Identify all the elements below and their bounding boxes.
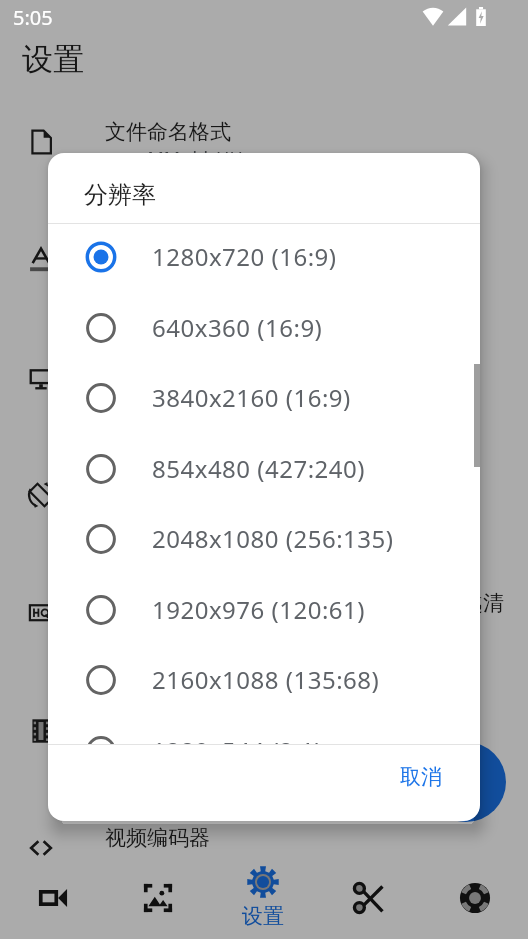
- button[interactable]: More: [422, 856, 528, 939]
- button[interactable]: 取消: [385, 750, 457, 804]
- button[interactable]: Screenshot: [105, 856, 210, 939]
- staticText: 1920x976 (120:61): [152, 593, 366, 626]
- button[interactable]: 视频编码器: [0, 789, 528, 906]
- button[interactable]: 640x360 (16:9): [48, 293, 480, 363]
- staticText: 视频编码器: [105, 825, 210, 851]
- button[interactable]: 视频质量（数值越高文件体积越大画面越清: [0, 554, 528, 671]
- button[interactable]: 分辨率: [0, 319, 528, 436]
- button[interactable]: 文件名前缀: [0, 201, 528, 318]
- staticText: 640x360 (16:9): [152, 311, 323, 344]
- staticText: 30 fps: [105, 735, 157, 760]
- staticText: 文件命名格式: [105, 119, 231, 145]
- staticText: 取消: [400, 764, 442, 790]
- button[interactable]: 1280x720 (16:9): [48, 223, 480, 292]
- button[interactable]: 视频帧率: [0, 672, 528, 789]
- staticText: 文件名前缀: [105, 237, 210, 263]
- button[interactable]: 屏幕方向: [0, 436, 528, 553]
- button[interactable]: Start recording: [426, 742, 506, 822]
- staticText: 高质量: [105, 617, 159, 640]
- staticText: 2048x1080 (256:135): [152, 522, 394, 555]
- staticText: 1280x720 (16:9): [152, 240, 337, 273]
- button[interactable]: 3840x2160 (16:9): [48, 363, 480, 433]
- staticText: 3840x2160 (16:9): [152, 381, 351, 414]
- staticText: 屏幕方向: [105, 472, 189, 498]
- staticText: yyyy-MM-dd_HH-mm-ss: [105, 146, 306, 171]
- button[interactable]: Settings: [210, 856, 316, 939]
- staticText: 5:05: [13, 4, 53, 31]
- button[interactable]: 2048x1080 (256:135): [48, 504, 480, 574]
- button[interactable]: 854x480 (427:240): [48, 434, 480, 504]
- staticText: （无）: [105, 264, 159, 287]
- button[interactable]: Record video: [0, 856, 105, 939]
- button[interactable]: Trim: [316, 856, 422, 939]
- staticText: 1280x544 (2:1): [152, 734, 323, 744]
- staticText: 1280x720 (16:9): [105, 382, 238, 407]
- staticText: 设置: [22, 40, 84, 79]
- button[interactable]: 2160x1088 (135:68): [48, 645, 480, 715]
- staticText: 2160x1088 (135:68): [152, 663, 380, 696]
- button[interactable]: 1920x976 (120:61): [48, 575, 480, 645]
- staticText: 854x480 (427:240): [152, 452, 366, 485]
- staticText: 设置: [242, 903, 284, 929]
- button[interactable]: 1280x544 (2:1): [48, 716, 480, 744]
- button[interactable]: 文件命名格式: [0, 83, 528, 200]
- staticText: 分辨率: [84, 180, 156, 210]
- staticText: 视频质量（数值越高文件体积越大画面越清: [105, 590, 504, 616]
